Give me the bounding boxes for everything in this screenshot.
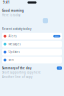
button[interactable]: Go [57,66,62,70]
staticText: Recent activity today [2,27,31,31]
button[interactable]: Messages [2,41,62,47]
staticText: Messages [8,42,20,46]
staticText: Sent [8,58,14,62]
staticText: Go [58,67,60,69]
staticText: Open [55,35,59,37]
staticText: Summary of the day [2,66,31,70]
button[interactable]: Sent [2,57,62,63]
staticText: Another line of copy [2,75,32,79]
staticText: Good morning [2,9,24,12]
staticText: Updates [8,50,19,54]
staticText: Here is today [2,13,20,17]
staticText: 9:41 [3,1,10,4]
button[interactable]: Alerts [2,33,62,39]
staticText: Short supporting copy here [2,71,41,74]
button[interactable]: Open [43,18,48,23]
staticText: Alerts [8,34,16,38]
button[interactable]: Updates [2,49,62,55]
